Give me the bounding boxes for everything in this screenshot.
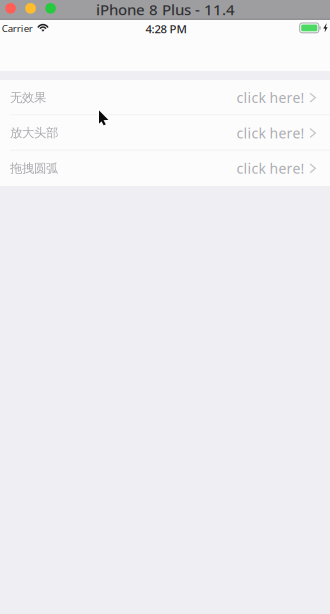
button[interactable]: 拖拽圆弧 bbox=[0, 151, 330, 186]
staticText: Carrier bbox=[2, 21, 33, 35]
staticText: 拖拽圆弧 bbox=[10, 160, 58, 176]
staticText: iPhone 8 Plus - 11.4 bbox=[96, 0, 235, 20]
staticText: click here! bbox=[236, 159, 304, 178]
staticText: 放大头部 bbox=[10, 125, 58, 141]
button[interactable]: 无效果 bbox=[0, 80, 330, 115]
button[interactable]: 放大头部 bbox=[0, 115, 330, 151]
staticText: 无效果 bbox=[10, 90, 46, 105]
staticText: click here! bbox=[236, 88, 304, 107]
staticText: 4:28 PM bbox=[145, 21, 186, 37]
staticText: click here! bbox=[236, 123, 304, 143]
